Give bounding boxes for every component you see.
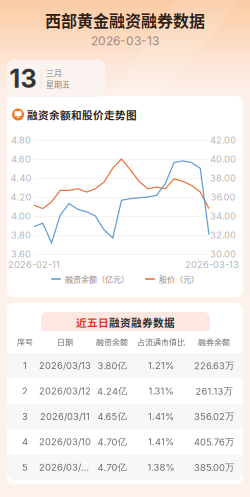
staticText: 30.00 (210, 248, 236, 260)
staticText: 385.00万 (194, 461, 234, 473)
staticText: 3.60 (11, 248, 31, 260)
staticText: 3.80亿 (97, 360, 126, 372)
staticText: 2026/03/13 (39, 360, 91, 371)
staticText: 4.24亿 (97, 385, 127, 397)
staticText: 股价（元） (159, 273, 199, 285)
staticText: 1.41% (148, 411, 174, 422)
staticText: 38.00 (210, 172, 236, 184)
staticText: 4.65亿 (97, 411, 126, 422)
staticText: 261.13万 (195, 385, 232, 397)
staticText: 4.70亿 (97, 461, 126, 473)
staticText: 1 (23, 360, 27, 371)
staticText: 日期 (57, 336, 73, 348)
staticText: 4.60 (11, 153, 31, 165)
staticText: 近五日 (76, 314, 109, 330)
staticText: 融资余额和股价走势图 (27, 107, 137, 122)
staticText: 占流通市值比 (137, 336, 185, 348)
staticText: 2026-03-13 (185, 259, 239, 270)
staticText: 4.20 (10, 191, 31, 203)
staticText: 356.02万 (194, 411, 234, 422)
staticText: 36.00 (210, 191, 235, 203)
staticText: 3.80 (11, 229, 31, 241)
staticText: 2026-03-13 (91, 34, 159, 48)
staticText: 2026/03/10 (39, 436, 91, 448)
staticText: 西部黄金融资融券数据 (45, 8, 205, 32)
staticText: 4.70亿 (97, 436, 126, 448)
staticText: 星期五 (46, 78, 70, 90)
staticText: 34.00 (210, 210, 236, 222)
staticText: 2026-02-11 (8, 259, 60, 270)
staticText: 2026/03/12 (39, 385, 91, 397)
staticText: 融券余额 (198, 336, 230, 348)
staticText: 融资余额 (96, 336, 128, 348)
staticText: 405.76万 (194, 436, 234, 448)
staticText: 融资融券数据 (109, 314, 175, 330)
staticText: 4 (22, 436, 28, 448)
staticText: 三月 (46, 67, 62, 78)
staticText: 融资余额（亿元） (65, 273, 129, 285)
staticText: 4.80 (11, 134, 31, 146)
staticText: 1.38% (147, 462, 174, 473)
staticText: 32.00 (210, 229, 236, 241)
staticText: 5 (22, 462, 28, 473)
staticText: 2 (22, 385, 28, 397)
staticText: 2026/03/09 (39, 462, 91, 473)
staticText: 1.41% (148, 436, 174, 448)
staticText: 序号 (17, 336, 33, 348)
staticText: 1.31% (148, 385, 173, 397)
staticText: 40.00 (210, 153, 236, 165)
staticText: 3 (22, 411, 28, 422)
staticText: 2026/03/11 (40, 411, 90, 422)
staticText: 4.00 (11, 210, 31, 222)
staticText: 1.21% (148, 360, 174, 371)
staticText: 226.63万 (194, 360, 234, 372)
staticText: 13 (9, 63, 36, 94)
staticText: 4.40 (10, 172, 31, 184)
staticText: 42.00 (210, 134, 236, 146)
